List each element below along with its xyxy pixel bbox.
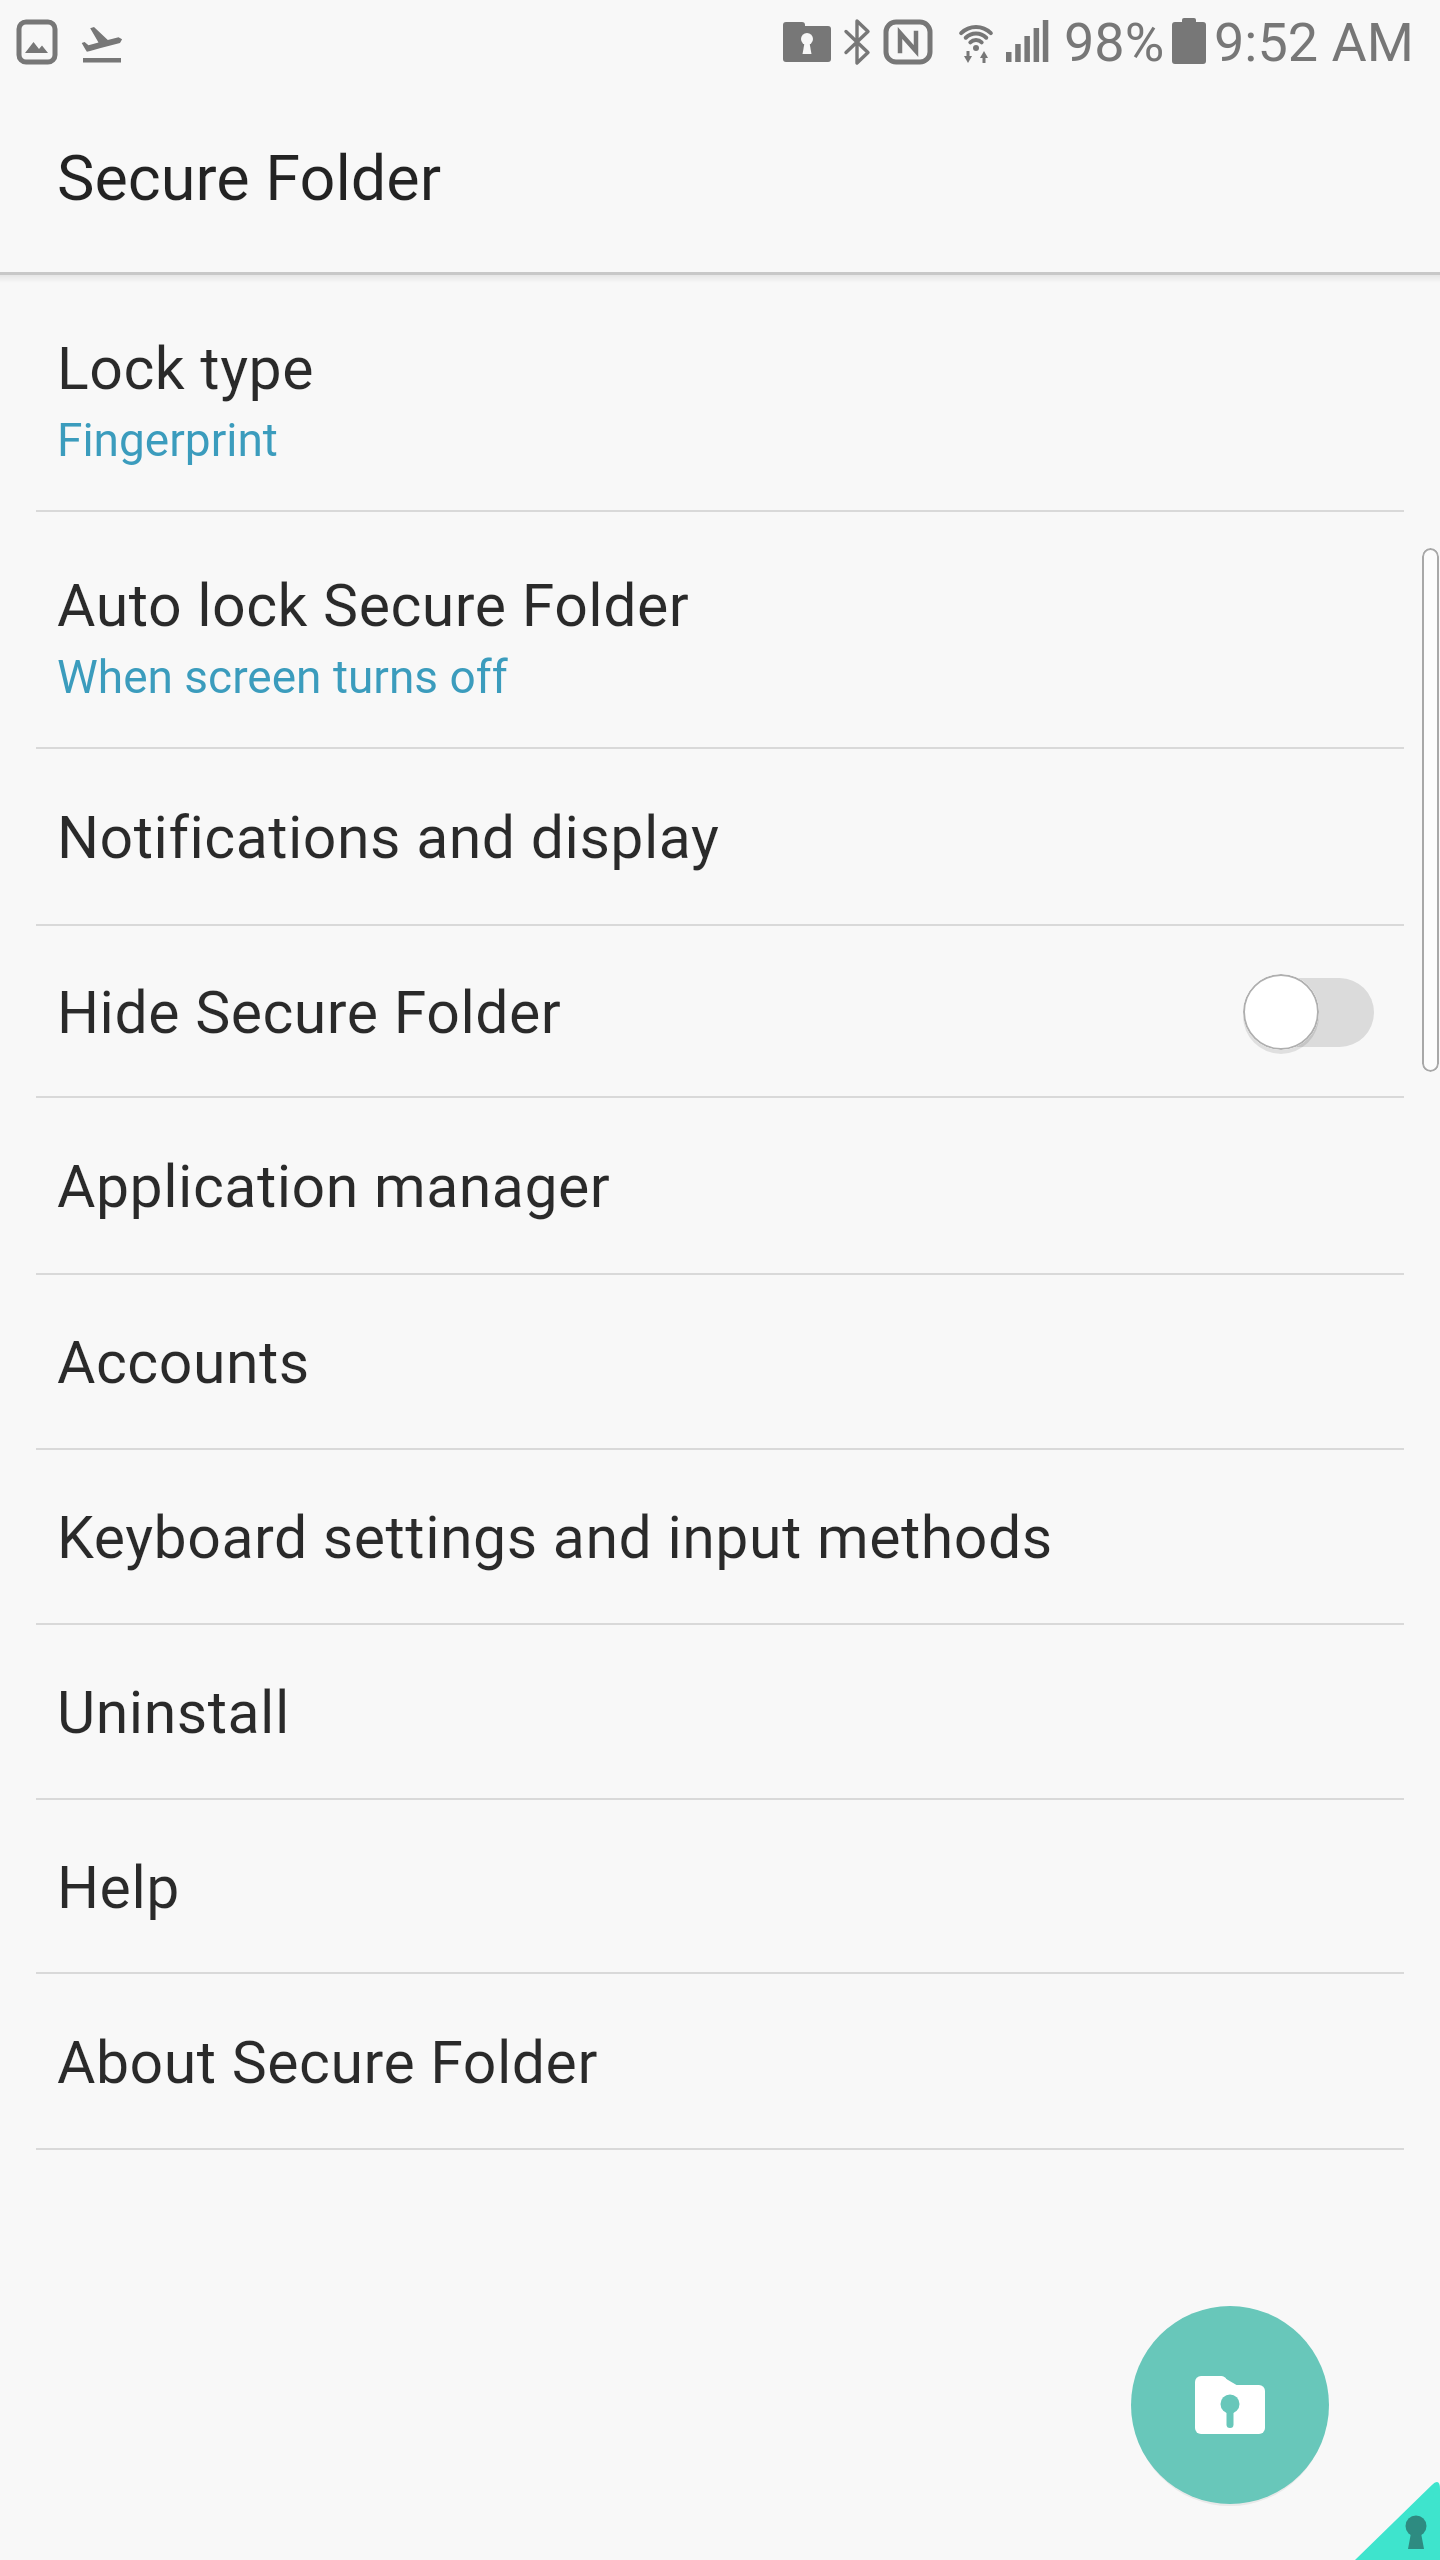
staticText: 98% [1064, 11, 1165, 74]
button[interactable] [1131, 2306, 1329, 2504]
staticText: Secure Folder [57, 142, 442, 216]
button[interactable]: Uninstall [0, 1625, 1440, 1800]
staticText: Keyboard settings and input methods [57, 1503, 1053, 1572]
button[interactable]: Auto lock Secure Folder [0, 512, 1440, 749]
button[interactable]: Notifications and display [0, 749, 1440, 926]
button[interactable]: Lock type [0, 275, 1440, 512]
staticText: 9:52 AM [1214, 11, 1414, 74]
button[interactable]: Hide Secure Folder [0, 926, 1440, 1098]
staticText: Notifications and display [57, 803, 720, 872]
staticText: Fingerprint [57, 413, 278, 467]
button[interactable]: Application manager [0, 1098, 1440, 1275]
staticText: Hide Secure Folder [57, 978, 562, 1047]
staticText: Help [57, 1853, 180, 1922]
button[interactable]: Keyboard settings and input methods [0, 1450, 1440, 1625]
button[interactable]: Accounts [0, 1275, 1440, 1450]
staticText: Application manager [57, 1152, 611, 1221]
button[interactable]: About Secure Folder [0, 1974, 1440, 2150]
staticText: Accounts [57, 1328, 310, 1397]
staticText: When screen turns off [57, 650, 508, 704]
staticText: Uninstall [57, 1678, 290, 1747]
staticText: Auto lock Secure Folder [57, 571, 690, 640]
staticText: About Secure Folder [57, 2028, 598, 2097]
button[interactable]: Help [0, 1800, 1440, 1974]
button[interactable] [1348, 2468, 1440, 2560]
staticText: Lock type [57, 334, 314, 403]
